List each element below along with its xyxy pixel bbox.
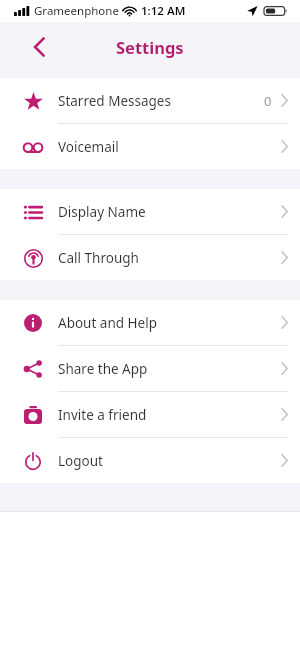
- button[interactable]: Share the App: [0, 346, 300, 391]
- staticText: Call Through: [58, 249, 139, 267]
- staticText: Display Name: [58, 203, 146, 221]
- button[interactable]: Display Name: [0, 189, 300, 234]
- staticText: Starred Messages: [58, 92, 171, 110]
- button[interactable]: Invite a friend: [0, 392, 300, 437]
- staticText: Voicemail: [58, 138, 119, 156]
- staticText: 0: [264, 92, 272, 110]
- button[interactable]: Starred Messages: [0, 78, 300, 123]
- button[interactable]: Call Through: [0, 235, 300, 280]
- staticText: About and Help: [58, 314, 157, 332]
- staticText: Invite a friend: [58, 406, 147, 424]
- staticText: Grameenphone: [34, 3, 119, 19]
- staticText: Settings: [116, 36, 184, 58]
- button[interactable]: Back: [22, 30, 56, 64]
- button[interactable]: About and Help: [0, 300, 300, 345]
- button[interactable]: Voicemail: [0, 124, 300, 169]
- staticText: Logout: [58, 452, 103, 470]
- staticText: Share the App: [58, 360, 148, 378]
- staticText: 1:12 AM: [141, 3, 186, 19]
- button[interactable]: Logout: [0, 438, 300, 483]
